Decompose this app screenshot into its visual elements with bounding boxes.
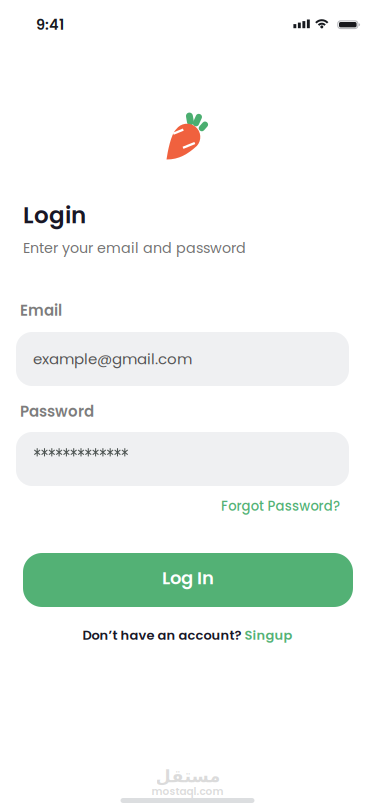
staticText: 9:41 xyxy=(36,14,64,35)
button[interactable]: Forgot Password? xyxy=(221,497,340,515)
staticText: Enter your email and password xyxy=(23,238,246,258)
staticText: mostaql.com xyxy=(151,784,223,799)
button[interactable]: Log In xyxy=(23,553,353,607)
staticText: Password xyxy=(20,401,94,422)
staticText: مستقل xyxy=(155,766,220,786)
staticText: Don’t have an account? xyxy=(82,626,244,644)
button[interactable]: Password xyxy=(16,432,349,486)
button[interactable]: Singup xyxy=(244,626,292,644)
staticText: Email xyxy=(20,300,62,321)
staticText: Forgot Password? xyxy=(221,497,340,515)
staticText: Login xyxy=(23,199,86,231)
staticText: Singup xyxy=(244,626,292,644)
button[interactable]: Email address xyxy=(16,332,349,386)
staticText: Log In xyxy=(162,565,214,591)
staticText: example@gmail.com xyxy=(33,348,192,369)
